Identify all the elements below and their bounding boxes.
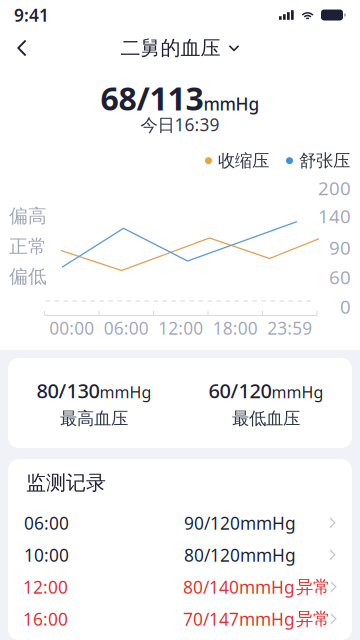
button[interactable]: 06:00 (8, 507, 352, 539)
staticText: 80/140mmHg (183, 575, 295, 598)
staticText: 90 (329, 235, 351, 260)
button[interactable]: 12:00 (8, 571, 352, 603)
staticText: 偏高 (9, 204, 47, 227)
staticText: 收缩压 (218, 150, 269, 171)
staticText: 偏低 (9, 265, 47, 288)
staticText: 最低血压 (232, 408, 300, 429)
staticText: 60 (329, 265, 351, 289)
button[interactable]: Back (0, 28, 44, 68)
staticText: 06:00 (24, 511, 69, 534)
staticText: 80/120mmHg (184, 543, 296, 566)
staticText: 12:00 (158, 316, 203, 339)
staticText: 正常 (9, 235, 47, 258)
staticText: 监测记录 (26, 470, 106, 495)
staticText: 68/113 (100, 77, 203, 119)
staticText: 异常 (296, 576, 330, 598)
staticText: 16:00 (23, 607, 68, 630)
staticText: 80/130 (36, 377, 99, 404)
staticText: 异常 (296, 608, 330, 630)
staticText: 二舅的血压 (120, 36, 220, 60)
staticText: 60/120 (208, 377, 271, 404)
staticText: 23:59 (267, 316, 312, 339)
staticText: 70/147mmHg (183, 607, 295, 630)
staticText: 10:00 (24, 543, 69, 566)
button[interactable]: 16:00 (8, 603, 352, 635)
staticText: 12:00 (23, 575, 68, 598)
button[interactable]: 10:00 (8, 539, 352, 571)
staticText: mmHg (203, 92, 259, 115)
staticText: mmHg (271, 381, 323, 403)
staticText: 140 (318, 204, 351, 228)
staticText: 06:00 (104, 316, 149, 339)
staticText: 0 (340, 294, 351, 319)
staticText: 最高血压 (60, 408, 128, 429)
staticText: 今日16:39 (140, 113, 219, 136)
staticText: 00:00 (49, 316, 94, 339)
staticText: 9:41 (14, 3, 49, 26)
staticText: 90/120mmHg (184, 511, 296, 534)
staticText: mmHg (99, 381, 151, 403)
staticText: 18:00 (213, 316, 258, 339)
staticText: 舒张压 (299, 150, 350, 171)
staticText: 200 (318, 176, 351, 200)
button[interactable]: 二舅的血压 (114, 28, 245, 68)
